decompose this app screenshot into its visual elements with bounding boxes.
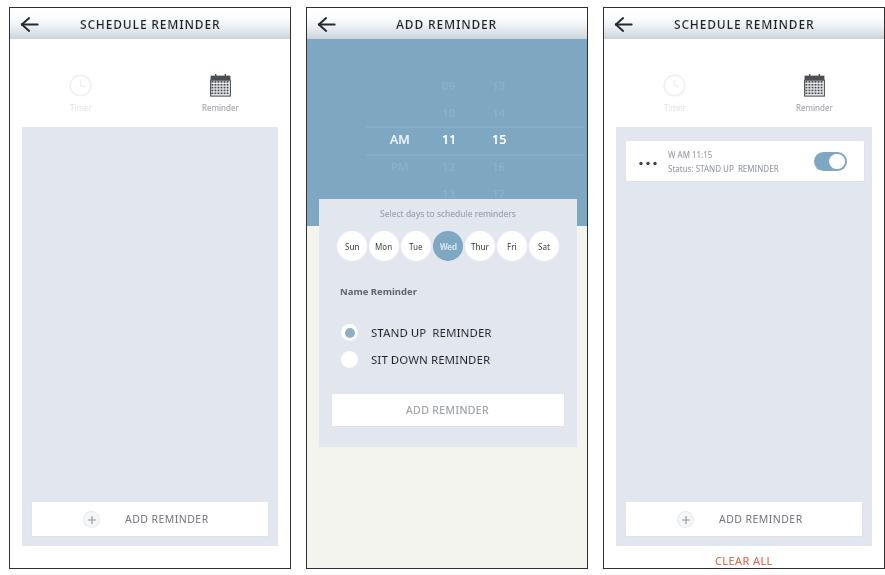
staticText: 13 [492, 78, 506, 94]
button[interactable]: Timer [69, 74, 92, 113]
staticText: SIT DOWN REMINDER [371, 352, 491, 368]
button[interactable]: Reminder [796, 74, 833, 113]
staticText: 16 [492, 159, 506, 175]
staticText: Timer [70, 102, 92, 113]
staticText: 17 [492, 186, 506, 202]
staticText: 15 [492, 131, 507, 148]
staticText: 09 [442, 78, 456, 94]
staticText: Reminder [202, 102, 239, 113]
button[interactable]: ADD REMINDER [332, 394, 564, 426]
staticText: Timer [664, 102, 686, 113]
button[interactable]: Back [608, 9, 638, 39]
staticText: ADD REMINDER [125, 512, 209, 526]
staticText: 13 [442, 186, 456, 202]
button[interactable]: SIT DOWN REMINDER [319, 351, 577, 368]
button[interactable]: ADD REMINDER [32, 502, 268, 536]
staticText: 12 [442, 159, 456, 175]
staticText: 11 [442, 131, 457, 148]
button[interactable]: Toggle reminder [814, 152, 847, 171]
staticText: AM [390, 131, 410, 148]
staticText: PM [391, 159, 409, 175]
button[interactable]: Reminder [202, 74, 239, 113]
staticText: 10 [442, 105, 456, 121]
button[interactable]: Fri [497, 231, 527, 261]
button[interactable]: Tue [401, 231, 431, 261]
staticText: 14 [492, 105, 506, 121]
button[interactable]: Back [311, 9, 341, 39]
staticText: Wed [440, 241, 457, 252]
staticText: Fri [507, 241, 517, 252]
staticText: Mon [375, 241, 393, 252]
button[interactable]: Thur [465, 231, 495, 261]
staticText: Thur [471, 241, 489, 252]
button[interactable]: Sat [529, 231, 559, 261]
staticText: Sun [345, 241, 360, 252]
staticText: Sat [538, 241, 551, 252]
staticText: ADD REMINDER [719, 512, 803, 526]
staticText: Status: STAND UP REMINDER [668, 163, 779, 174]
staticText: Select days to schedule reminders [319, 208, 577, 220]
staticText: Tue [409, 241, 423, 252]
staticText: SCHEDULE REMINDER [80, 16, 221, 32]
staticText: Reminder [796, 102, 833, 113]
staticText: ADD REMINDER [396, 16, 498, 32]
button[interactable]: Back [14, 9, 44, 39]
staticText: W AM 11:15 [668, 149, 713, 160]
button[interactable]: Wed [433, 231, 463, 261]
staticText: SCHEDULE REMINDER [674, 16, 815, 32]
button[interactable]: STAND UP REMINDER [319, 324, 577, 341]
button[interactable]: Sun [337, 231, 367, 261]
button[interactable]: ADD REMINDER [626, 502, 862, 536]
staticText: STAND UP REMINDER [371, 325, 492, 341]
button[interactable]: More options [626, 141, 864, 181]
button[interactable]: CLEAR ALL [715, 553, 773, 568]
staticText: ADD REMINDER [406, 403, 490, 417]
button[interactable]: Mon [369, 231, 399, 261]
button[interactable]: Timer [663, 74, 686, 113]
other: More options [638, 152, 656, 170]
staticText: Name Reminder [340, 285, 417, 298]
